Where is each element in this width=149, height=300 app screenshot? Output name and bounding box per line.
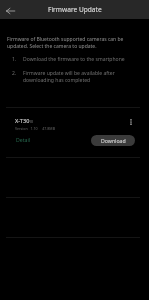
staticText: Download the firmware to the smartphone: [23, 56, 125, 63]
staticText: Download: [101, 137, 126, 144]
button[interactable]: Detail: [12, 134, 35, 145]
button[interactable]: More options: [124, 115, 138, 129]
staticText: Firmware update will be available after …: [23, 70, 115, 83]
staticText: X-T30: [15, 117, 30, 125]
staticText: 1.: [12, 56, 17, 63]
staticText: 2.: [12, 70, 17, 77]
button[interactable]: Back: [0, 1, 21, 20]
button[interactable]: Download: [91, 135, 135, 146]
button[interactable]: X-T30: [0, 108, 149, 157]
staticText: Firmware Update: [48, 5, 102, 14]
staticText: Firmware of Bluetooth supported cameras …: [7, 36, 124, 49]
staticText: Detail: [16, 136, 31, 143]
staticText: Version 1.10 47.8MB: [15, 126, 55, 131]
